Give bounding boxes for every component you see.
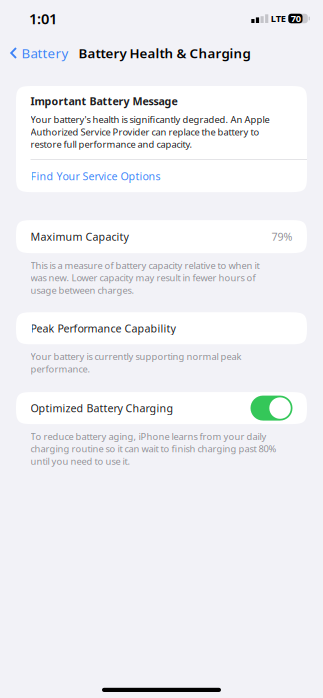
staticText: 70	[291, 12, 301, 25]
button[interactable]: Optimized Battery Charging	[250, 396, 292, 421]
staticText: Your battery's health is significantly d…	[30, 113, 269, 150]
staticText: Peak Performance Capability	[30, 321, 175, 335]
button[interactable]: Battery	[0, 39, 72, 67]
staticText: LTE	[271, 12, 286, 25]
staticText: Your battery is currently supporting nor…	[30, 350, 241, 375]
staticText: 79%	[271, 229, 292, 244]
button[interactable]: Find Your Service Options	[16, 160, 307, 192]
staticText: Optimized Battery Charging	[30, 401, 173, 415]
staticText: This is a measure of battery capacity re…	[30, 259, 259, 296]
staticText: Maximum Capacity	[30, 229, 128, 244]
staticText: Important Battery Message	[30, 94, 177, 108]
staticText: Battery	[21, 44, 68, 62]
staticText: Find Your Service Options	[30, 169, 160, 183]
button[interactable]: Peak Performance Capability	[16, 312, 307, 344]
button[interactable]: Maximum Capacity	[16, 220, 307, 253]
staticText: Battery Health & Charging	[78, 44, 250, 62]
staticText: 1:01	[29, 9, 57, 28]
staticText: To reduce battery aging, iPhone learns f…	[30, 430, 276, 467]
